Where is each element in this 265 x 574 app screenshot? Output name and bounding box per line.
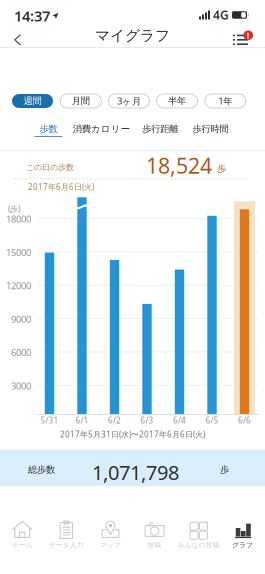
button[interactable]: 半年: [157, 94, 198, 108]
button[interactable]: グラフ: [221, 508, 265, 570]
staticText: 6/6: [238, 415, 251, 426]
staticText: (歩): [8, 203, 20, 214]
button[interactable]: 月間: [60, 94, 101, 108]
staticText: 総歩数: [28, 464, 55, 475]
staticText: 1,071,798: [92, 459, 179, 486]
staticText: 15000: [6, 246, 31, 258]
staticText: 9000: [11, 313, 31, 325]
button[interactable]: 歩数: [34, 121, 62, 139]
staticText: 18000: [6, 213, 31, 225]
staticText: 半年: [168, 95, 186, 107]
button[interactable]: 3ヶ月: [108, 94, 149, 108]
button[interactable]: 1年: [205, 94, 246, 108]
button[interactable]: 歩行時間: [191, 121, 231, 139]
staticText: 3ヶ月: [117, 95, 141, 107]
staticText: 週間: [23, 95, 41, 107]
staticText: 4G: [213, 7, 229, 23]
button[interactable]: Notifications: [228, 27, 258, 53]
button[interactable]: ホーム: [0, 508, 44, 570]
staticText: 歩行距離: [142, 123, 178, 135]
staticText: この日の歩数: [26, 162, 74, 172]
staticText: 6/4: [173, 415, 186, 426]
staticText: マップ: [100, 541, 121, 549]
staticText: 1年: [218, 95, 232, 107]
staticText: 2017年6月6日(火): [28, 181, 94, 192]
staticText: マイグラフ: [95, 26, 170, 44]
staticText: ホーム: [12, 541, 33, 549]
staticText: 消費カロリー: [73, 123, 130, 135]
staticText: 歩: [217, 163, 226, 174]
staticText: 歩: [220, 464, 229, 475]
staticText: 6/2: [108, 415, 121, 426]
button[interactable]: 週間: [12, 94, 53, 108]
button[interactable]: データ入力: [44, 508, 88, 570]
staticText: データ入力: [49, 541, 84, 549]
staticText: 12000: [6, 279, 31, 292]
button[interactable]: 消費カロリー: [73, 121, 130, 139]
button[interactable]: Back: [8, 28, 28, 52]
staticText: 歩数: [39, 123, 57, 135]
staticText: 18,524: [146, 151, 212, 180]
staticText: みんなの投稿: [178, 541, 220, 549]
staticText: !: [247, 29, 250, 41]
staticText: 3000: [11, 380, 31, 392]
staticText: 14:37: [14, 6, 50, 25]
staticText: 2017年5月31日(水)〜2017年6月6日(火): [60, 429, 205, 440]
staticText: 歩行時間: [193, 123, 229, 135]
staticText: 投稿: [148, 541, 162, 549]
staticText: 6000: [11, 346, 31, 359]
staticText: 月間: [72, 95, 90, 107]
button[interactable]: マップ: [88, 508, 132, 570]
staticText: 5/31: [40, 415, 58, 426]
staticText: 6/1: [75, 415, 88, 426]
button[interactable]: 投稿: [132, 508, 177, 570]
button[interactable]: 歩行距離: [140, 121, 180, 139]
staticText: 6/5: [205, 415, 218, 426]
staticText: グラフ: [232, 541, 253, 549]
staticText: 6/3: [140, 415, 153, 426]
button[interactable]: みんなの投稿: [177, 508, 221, 570]
